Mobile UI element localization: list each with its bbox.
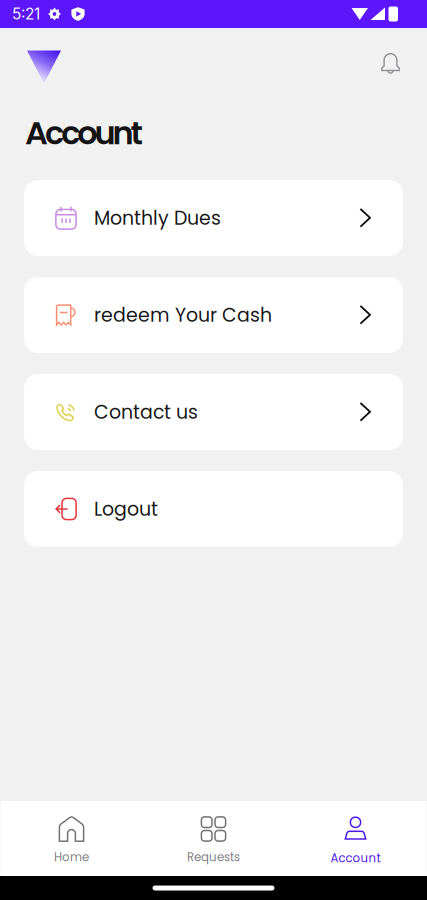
staticText: Account bbox=[25, 111, 143, 155]
button[interactable]: Requests bbox=[142, 801, 284, 876]
button[interactable]: Monthly Dues bbox=[24, 180, 403, 256]
button[interactable]: Contact us bbox=[24, 374, 403, 450]
button[interactable]: Home bbox=[0, 801, 142, 876]
staticText: Account bbox=[330, 850, 380, 866]
button[interactable]: Logout bbox=[24, 471, 403, 547]
staticText: redeem Your Cash bbox=[94, 302, 272, 328]
staticText: Monthly Dues bbox=[94, 205, 221, 231]
button[interactable]: Account bbox=[284, 801, 426, 876]
staticText: Contact us bbox=[94, 399, 198, 425]
staticText: Logout bbox=[94, 496, 158, 522]
staticText: 5:21 bbox=[12, 5, 40, 23]
button[interactable]: Notifications bbox=[365, 50, 400, 90]
staticText: Home bbox=[54, 849, 89, 865]
staticText: Requests bbox=[187, 849, 240, 865]
button[interactable]: redeem Your Cash bbox=[24, 277, 403, 353]
